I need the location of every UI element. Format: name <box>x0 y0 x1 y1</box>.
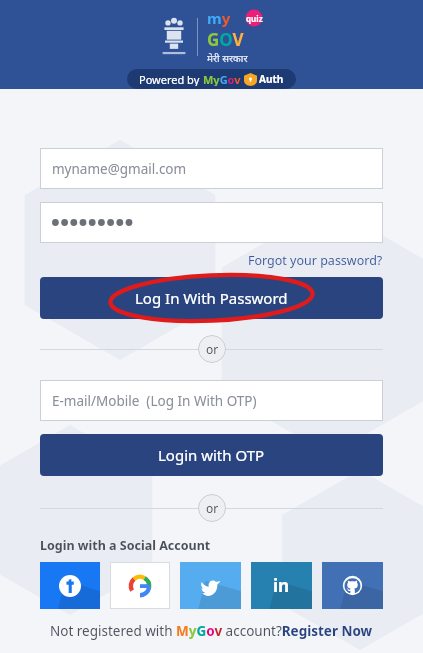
button[interactable]: Twitter <box>180 562 241 609</box>
staticText: Login with a Social Account <box>40 537 211 554</box>
button[interactable]: Forgot your password? <box>248 252 383 269</box>
staticText: in <box>273 574 290 597</box>
button[interactable]: E-mail/Mobile (Log In With OTP) <box>40 380 383 421</box>
staticText: GOV <box>207 28 244 51</box>
staticText: Not registered with MyGov account?Regist… <box>50 622 373 640</box>
staticText: Powered by <box>139 72 203 86</box>
button[interactable] <box>40 202 383 243</box>
staticText: Auth <box>259 72 284 86</box>
staticText: मेरी सरकार <box>207 51 248 65</box>
staticText: or <box>206 341 219 357</box>
staticText: my <box>207 8 231 28</box>
staticText: E-mail/Mobile (Log In With OTP) <box>52 392 257 410</box>
button[interactable]: Not registered with MyGov account?Regist… <box>50 622 373 640</box>
button[interactable]: Google <box>110 562 170 609</box>
button[interactable]: Facebook <box>40 562 100 609</box>
staticText: myname@gmail.com <box>52 160 187 178</box>
staticText: or <box>206 500 219 516</box>
staticText: Forgot your password? <box>248 252 383 269</box>
button[interactable]: Log In With Password <box>40 277 383 319</box>
staticText: quiz <box>246 13 263 24</box>
button[interactable]: GitHub <box>322 562 383 609</box>
staticText: Login with OTP <box>158 445 265 465</box>
button[interactable]: myname@gmail.com <box>40 148 383 189</box>
staticText: Log In With Password <box>135 288 288 308</box>
button[interactable]: LinkedIn <box>251 562 312 609</box>
staticText: MyGov <box>203 72 241 86</box>
button[interactable]: Login with OTP <box>40 434 383 476</box>
